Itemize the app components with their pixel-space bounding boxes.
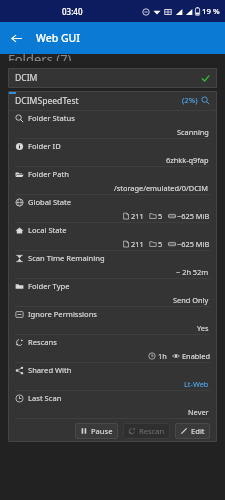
staticText: Web GUI — [36, 31, 81, 45]
staticText: Global State — [28, 197, 72, 207]
staticText: Local State — [28, 225, 67, 235]
staticText: Scanning — [177, 127, 209, 137]
staticText: Edit — [191, 426, 205, 436]
button[interactable]: Folder Type — [8, 279, 217, 307]
staticText: Last Scan — [28, 393, 62, 403]
staticText: (2%) — [182, 95, 198, 106]
staticText: Rescans — [28, 337, 57, 347]
button[interactable]: Local State — [8, 223, 217, 251]
staticText: ~625 MiB — [177, 211, 210, 221]
staticText: DCIM — [15, 72, 38, 84]
staticText: ~625 MiB — [177, 239, 210, 249]
staticText: Folder Path — [28, 169, 69, 179]
button[interactable]: Rescan — [123, 423, 170, 439]
button[interactable]: Back — [0, 22, 32, 54]
button[interactable]: Global State — [8, 195, 217, 223]
staticText: 1h — [158, 351, 167, 361]
button[interactable]: Edit — [175, 423, 210, 439]
staticText: Pause — [91, 426, 113, 436]
button[interactable]: DCIMSpeedTest — [8, 91, 217, 110]
button[interactable]: Rescans — [8, 335, 217, 363]
staticText: 211 — [131, 211, 144, 221]
staticText: Yes — [197, 323, 209, 333]
staticText: 19 % — [202, 6, 220, 17]
button[interactable]: Pause — [75, 423, 118, 439]
staticText: Enabled — [182, 351, 210, 361]
staticText: ~ 2h 52m — [176, 267, 209, 277]
staticText: Folder Type — [28, 281, 70, 291]
staticText: Folders (7) — [8, 50, 72, 61]
staticText: /storage/emulated/0/DCIM — [114, 183, 209, 193]
staticText: Never — [188, 407, 209, 417]
button[interactable]: Folder Status — [8, 111, 217, 139]
staticText: 6zhkk-q9fap — [166, 155, 209, 165]
staticText: Send Only — [173, 295, 209, 305]
staticText: DCIMSpeedTest — [15, 95, 79, 107]
staticText: 5 — [158, 239, 163, 249]
button[interactable]: Shared With — [8, 363, 217, 391]
staticText: 03:40 — [62, 6, 83, 17]
button[interactable]: Ignore Permissions — [8, 307, 217, 335]
staticText: Lt-Web — [184, 379, 209, 389]
staticText: Shared With — [28, 365, 72, 375]
staticText: 211 — [131, 239, 144, 249]
staticText: 5 — [158, 211, 163, 221]
button[interactable]: Folder ID — [8, 139, 217, 167]
staticText: Scan Time Remaining — [28, 253, 105, 263]
button[interactable]: DCIM — [8, 68, 217, 88]
button[interactable]: Folder Path — [8, 167, 217, 195]
staticText: Rescan — [139, 426, 165, 436]
staticText: Folder ID — [28, 141, 61, 151]
button[interactable]: Last Scan — [8, 391, 217, 419]
staticText: Folder Status — [28, 113, 75, 123]
button[interactable]: Scan Time Remaining — [8, 251, 217, 279]
staticText: Ignore Permissions — [28, 309, 98, 319]
